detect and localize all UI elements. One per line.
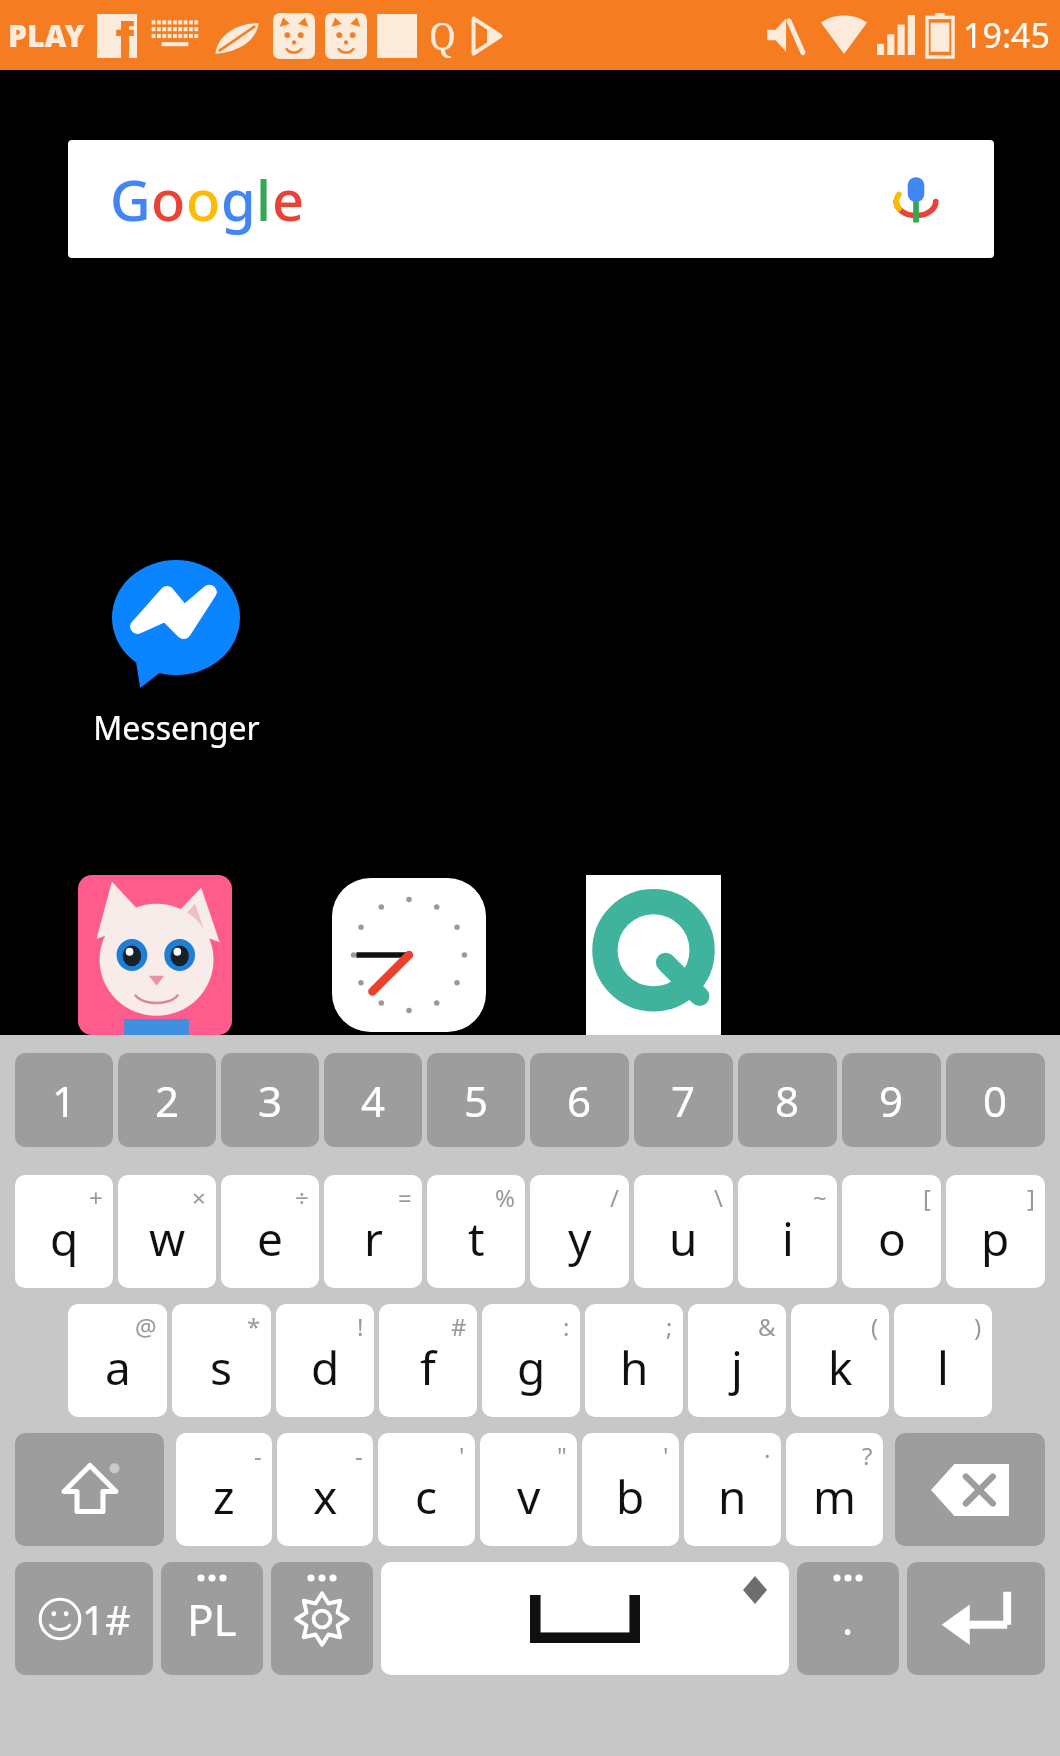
button[interactable]: 0 [946,1053,1045,1147]
button[interactable]: / [530,1175,629,1288]
staticText: p [981,1207,1010,1270]
button[interactable]: 6 [530,1053,629,1147]
staticText: ÷ [295,1181,309,1214]
staticText: o [151,161,186,237]
button[interactable]: G [68,140,994,258]
button[interactable]: % [427,1175,525,1288]
button[interactable]: · [684,1433,781,1546]
button[interactable]: ' [582,1433,679,1546]
button[interactable]: ] [946,1175,1045,1288]
button[interactable]: Shift [15,1433,164,1546]
staticText: b [616,1465,645,1528]
button[interactable]: ( [791,1304,889,1417]
button[interactable] [586,875,721,1035]
staticText: ~ [813,1181,827,1214]
staticText: ? [862,1439,873,1472]
staticText: 1 [52,1072,77,1129]
button[interactable]: Settings [271,1562,373,1675]
staticText: m [813,1465,857,1528]
staticText: # [451,1310,467,1343]
button[interactable]: - [277,1433,373,1546]
staticText: z [213,1465,235,1528]
button[interactable]: [ [842,1175,941,1288]
button[interactable]: ! [276,1304,374,1417]
button[interactable]: Enter [907,1562,1045,1675]
staticText: ) [974,1310,982,1343]
staticText: k [828,1336,853,1399]
staticText: 7 [671,1072,696,1129]
staticText: c [415,1465,438,1528]
button[interactable]: ÷ [221,1175,319,1288]
button[interactable]: ; [585,1304,683,1417]
staticText: l [937,1336,949,1399]
staticText: - [254,1439,262,1472]
button[interactable]: 8 [738,1053,837,1147]
staticText: g [221,161,256,237]
staticText: · [764,1439,771,1472]
staticText: r [364,1207,383,1270]
button[interactable]: ' [378,1433,475,1546]
staticText: a [105,1336,131,1399]
button[interactable]: \ [634,1175,733,1288]
staticText: & [758,1310,776,1343]
staticText: % [495,1181,515,1214]
button[interactable]: & [688,1304,786,1417]
staticText: f [420,1336,436,1399]
staticText: Q [429,11,456,60]
staticText: ] [1027,1181,1035,1214]
button[interactable]: PL [161,1562,263,1675]
staticText: s [210,1336,233,1399]
button[interactable]: 2 [118,1053,216,1147]
staticText: u [669,1207,698,1270]
staticText: ' [459,1439,465,1472]
staticText: . [842,1590,854,1647]
button[interactable]: ? [786,1433,883,1546]
staticText: q [50,1207,79,1270]
button[interactable]: 7 [634,1053,733,1147]
button[interactable]: : [482,1304,580,1417]
staticText: - [355,1439,363,1472]
button[interactable]: Space [381,1562,789,1675]
staticText: 9 [879,1072,904,1129]
button[interactable]: - [176,1433,272,1546]
staticText: w [149,1207,186,1270]
button[interactable]: 3 [221,1053,319,1147]
button[interactable]: 9 [842,1053,941,1147]
button[interactable]: Voice search [890,173,942,225]
button[interactable]: × [118,1175,216,1288]
staticText: = [398,1181,412,1214]
staticText: 6 [567,1072,592,1129]
button[interactable]: Emoji and symbols [15,1562,153,1675]
button[interactable] [332,875,486,1035]
button[interactable]: @ [68,1304,167,1417]
staticText: \ [714,1181,723,1214]
staticText: : [563,1310,570,1343]
button[interactable]: + [15,1175,113,1288]
staticText: [ [923,1181,931,1214]
button[interactable] [78,875,232,1035]
staticText: 5 [464,1072,489,1129]
staticText: l [256,161,272,237]
button[interactable]: # [379,1304,477,1417]
staticText: Messenger [93,706,260,750]
button[interactable]: ) [894,1304,992,1417]
staticText: h [620,1336,649,1399]
button[interactable]: = [324,1175,422,1288]
staticText: 0 [983,1072,1008,1129]
button[interactable]: 5 [427,1053,525,1147]
button[interactable]: Backspace [895,1433,1045,1546]
button[interactable]: ~ [738,1175,837,1288]
button[interactable]: 4 [324,1053,422,1147]
staticText: 2 [155,1072,180,1129]
staticText: 19:45 [963,12,1050,58]
staticText: i [782,1207,794,1270]
staticText: o [878,1207,906,1270]
button[interactable]: . [797,1562,899,1675]
staticText: o [186,161,221,237]
button[interactable]: " [480,1433,577,1546]
button[interactable]: 1 [15,1053,113,1147]
button[interactable]: Messenger [86,560,266,750]
staticText: PLAY [8,15,85,56]
staticText: d [311,1336,340,1399]
button[interactable]: * [172,1304,271,1417]
